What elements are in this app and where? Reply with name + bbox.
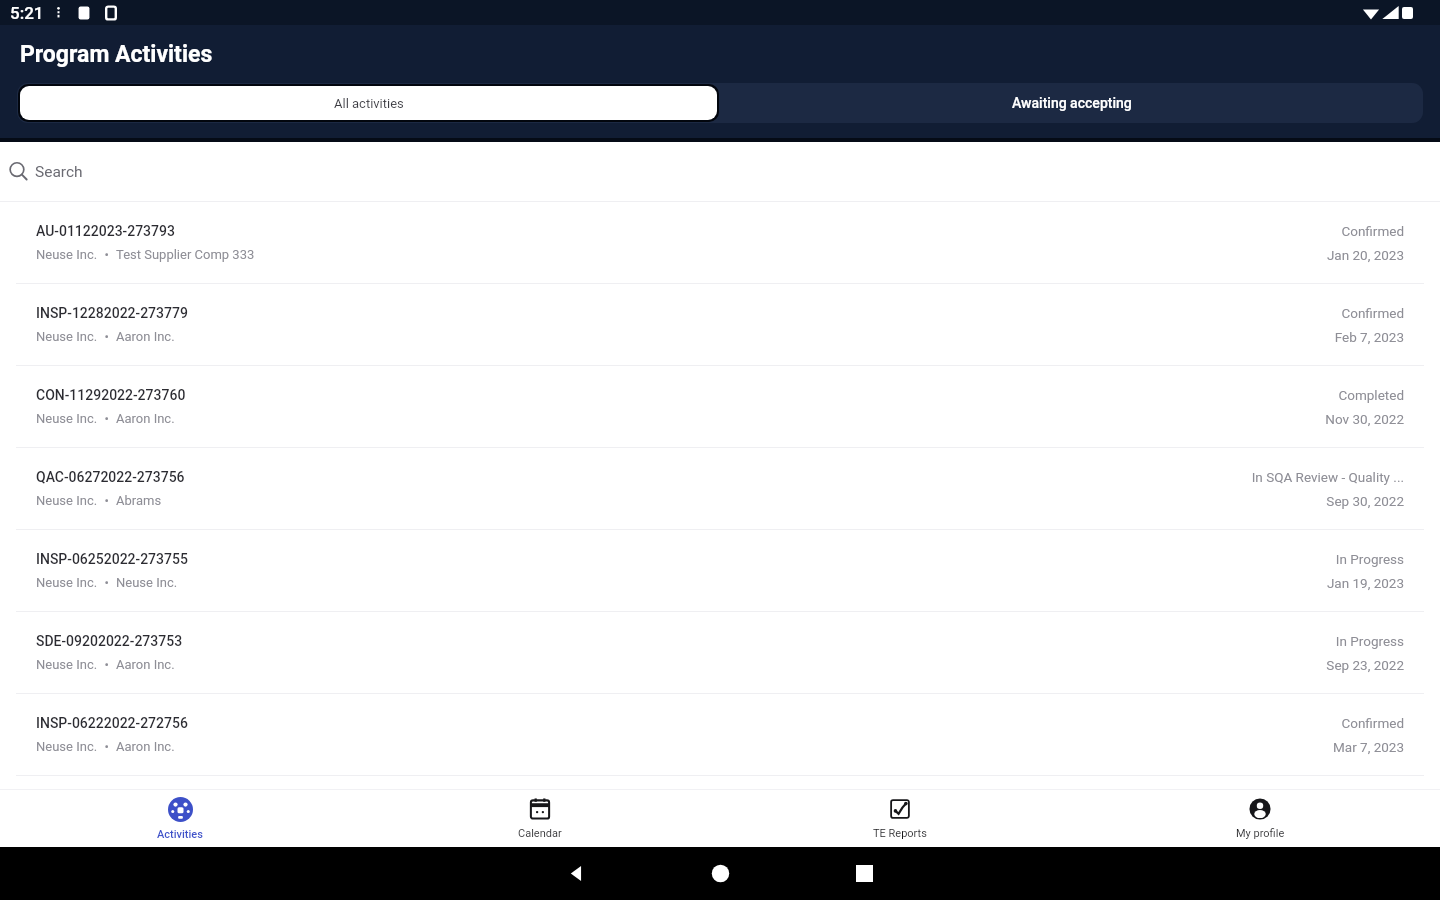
button[interactable]: Activities — [0, 790, 360, 847]
staticText: AU-01122023-273793 — [36, 223, 175, 239]
staticText: INSP-12282022-273779 — [36, 305, 188, 321]
staticText: All activities — [334, 96, 404, 111]
staticText: Aaron Inc. — [116, 411, 175, 426]
staticText: In SQA Review - Quality ... — [1251, 469, 1404, 485]
staticText: Confirmed — [1341, 223, 1404, 239]
staticText: Sep 23, 2022 — [1326, 657, 1404, 673]
staticText: In Progress — [1335, 551, 1404, 567]
staticText: Neuse Inc. — [36, 411, 98, 426]
staticText: Test Supplier Comp 333 — [116, 247, 255, 262]
button[interactable]: CON-11292022-273760 — [0, 366, 1440, 448]
staticText: Neuse Inc. — [116, 575, 178, 590]
button[interactable]: INSP-06252022-273755 — [0, 530, 1440, 612]
staticText: INSP-06252022-273755 — [36, 551, 188, 567]
staticText: Completed — [1338, 387, 1404, 403]
staticText: SDE-09202022-273753 — [36, 633, 183, 649]
staticText: • — [98, 657, 116, 672]
staticText: QAC-06272022-273756 — [36, 469, 185, 485]
staticText: • — [98, 411, 116, 426]
staticText: • — [98, 575, 116, 590]
button[interactable]: INSP-06222022-272756 — [0, 694, 1440, 776]
button[interactable]: My profile — [1080, 790, 1440, 847]
staticText: In Progress — [1335, 633, 1404, 649]
staticText: • — [98, 247, 116, 262]
other: Search — [9, 162, 28, 181]
staticText: Feb 7, 2023 — [1334, 329, 1404, 345]
button[interactable]: All activities — [20, 86, 717, 120]
button[interactable]: Calendar — [360, 790, 720, 847]
button[interactable]: Home — [648, 847, 792, 900]
button[interactable]: AU-01122023-273793 — [0, 202, 1440, 284]
staticText: My profile — [1236, 827, 1285, 840]
staticText: Mar 7, 2023 — [1333, 739, 1404, 755]
staticText: Search — [35, 163, 83, 181]
staticText: Neuse Inc. — [36, 657, 98, 672]
staticText: • — [98, 329, 116, 344]
staticText: Jan 20, 2023 — [1326, 247, 1404, 263]
staticText: Program Activities — [20, 41, 213, 68]
staticText: Activities — [157, 828, 203, 841]
staticText: Neuse Inc. — [36, 575, 98, 590]
button[interactable]: QAC-06272022-273756 — [0, 448, 1440, 530]
staticText: • — [98, 739, 116, 754]
button[interactable]: Search — [0, 142, 1440, 201]
button[interactable]: SDE-09202022-273753 — [0, 612, 1440, 694]
staticText: Neuse Inc. — [36, 739, 98, 754]
staticText: Neuse Inc. — [36, 329, 98, 344]
staticText: Aaron Inc. — [116, 657, 175, 672]
button[interactable]: Back — [504, 847, 648, 900]
staticText: 5:21 — [10, 3, 44, 23]
staticText: Awaiting accepting — [1012, 95, 1132, 111]
staticText: • — [98, 493, 116, 508]
staticText: INSP-06222022-272756 — [36, 715, 188, 731]
staticText: Nov 30, 2022 — [1325, 411, 1404, 427]
staticText: TE Reports — [873, 827, 927, 840]
button[interactable]: INSP-12282022-273779 — [0, 284, 1440, 366]
staticText: CON-11292022-273760 — [36, 387, 186, 403]
staticText: Sep 30, 2022 — [1326, 493, 1404, 509]
staticText: Confirmed — [1341, 715, 1404, 731]
staticText: Abrams — [116, 493, 162, 508]
staticText: Calendar — [518, 827, 562, 840]
button[interactable]: Awaiting accepting — [720, 83, 1423, 123]
staticText: Aaron Inc. — [116, 739, 175, 754]
staticText: Neuse Inc. — [36, 493, 98, 508]
button[interactable]: TE Reports — [720, 790, 1080, 847]
staticText: Neuse Inc. — [36, 247, 98, 262]
staticText: Confirmed — [1341, 305, 1404, 321]
staticText: Jan 19, 2023 — [1326, 575, 1404, 591]
button[interactable]: Recent apps — [792, 847, 936, 900]
staticText: Aaron Inc. — [116, 329, 175, 344]
